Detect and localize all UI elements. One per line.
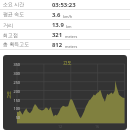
staticText: 최고점 <box>3 32 18 38</box>
staticText: 812 <box>52 41 63 49</box>
staticText: 300 <box>7 71 20 76</box>
staticText: 321 <box>52 31 63 39</box>
staticText: 50 <box>7 115 20 120</box>
staticText: 16 <box>95 124 100 129</box>
button[interactable]: 거리 <box>0 20 130 30</box>
staticText: km/h <box>63 14 73 19</box>
staticText: 소요 시간 <box>3 1 25 8</box>
staticText: 평균 속도 <box>3 11 25 18</box>
staticText: 3.6 <box>52 11 61 19</box>
button[interactable]: 소요 시간 <box>0 0 130 10</box>
staticText: 200 <box>7 89 20 94</box>
staticText: 150 <box>7 98 20 103</box>
staticText: 고도 <box>63 60 72 65</box>
staticText: 350 <box>7 62 20 67</box>
staticText: 13.9 <box>52 21 64 29</box>
staticText: 고도 <box>5 90 10 98</box>
button[interactable]: 최고점 <box>0 30 130 40</box>
staticText: meters <box>65 34 78 39</box>
staticText: 12 <box>58 124 63 129</box>
staticText: 거리 <box>3 22 13 28</box>
staticText: 총 획득고도 <box>3 41 30 48</box>
button[interactable]: 평균 속도 <box>0 10 130 20</box>
staticText: 250 <box>7 80 20 85</box>
staticText: km <box>66 24 72 29</box>
staticText: meters <box>65 44 78 49</box>
staticText: 100 <box>7 106 20 111</box>
staticText: 03:53:23 <box>52 1 76 9</box>
button[interactable]: 총 획득고도 <box>0 40 130 50</box>
